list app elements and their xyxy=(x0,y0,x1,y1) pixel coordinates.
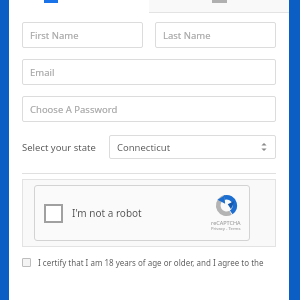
staticText: Email xyxy=(30,66,55,79)
button[interactable]: I certify that I am 18 years of age or o… xyxy=(22,257,276,268)
button[interactable]: Email xyxy=(22,59,276,85)
staticText: I certify that I am 18 years of age or o… xyxy=(38,257,264,268)
button[interactable]: Choose A Password xyxy=(22,96,276,122)
button[interactable]: Connecticut xyxy=(109,135,276,159)
staticText: reCAPTCHA xyxy=(211,219,241,226)
button[interactable]: Individual sign up tab xyxy=(9,0,143,13)
button[interactable]: I'm not a robot xyxy=(34,185,250,241)
staticText: Select your state xyxy=(22,141,96,154)
staticText: Choose A Password xyxy=(30,103,118,116)
staticText: I'm not a robot xyxy=(72,206,142,220)
button[interactable]: First Name xyxy=(22,22,143,48)
staticText: Last Name xyxy=(163,29,211,42)
staticText: First Name xyxy=(30,29,79,42)
staticText: Connecticut xyxy=(117,141,171,154)
button[interactable]: Business sign up tab xyxy=(149,0,289,13)
staticText: Privacy - Terms xyxy=(211,226,241,232)
button[interactable]: Last Name xyxy=(155,22,276,48)
